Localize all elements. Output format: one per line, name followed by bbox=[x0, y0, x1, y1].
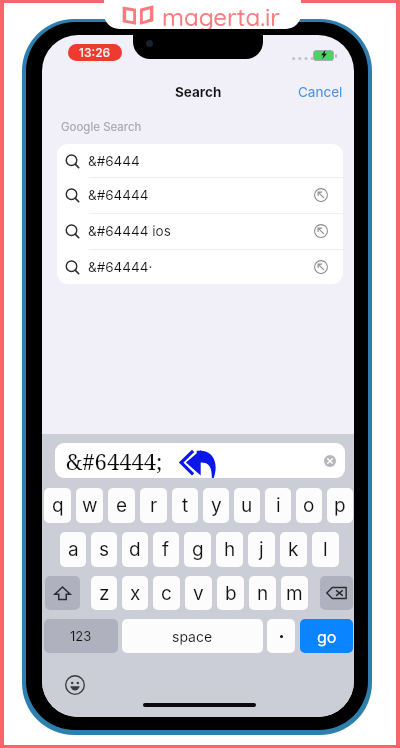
button[interactable]: o bbox=[296, 488, 322, 523]
button[interactable]: h bbox=[216, 532, 243, 567]
staticText: n bbox=[257, 582, 269, 605]
button[interactable]: Search suggestion bbox=[57, 177, 343, 213]
button[interactable]: Use suggestion bbox=[306, 252, 336, 282]
staticText: &#64444· bbox=[88, 259, 153, 275]
button[interactable]: n bbox=[249, 576, 276, 610]
button[interactable]: f bbox=[153, 532, 179, 567]
staticText: r bbox=[150, 494, 158, 517]
button[interactable]: u bbox=[234, 488, 260, 523]
button[interactable]: q bbox=[44, 488, 71, 523]
button[interactable]: go bbox=[300, 619, 353, 653]
staticText: s bbox=[99, 538, 110, 561]
staticText: p bbox=[334, 494, 346, 517]
button[interactable]: &#64444; bbox=[55, 443, 345, 478]
button[interactable]: Search suggestion bbox=[57, 144, 343, 177]
staticText: q bbox=[52, 494, 64, 517]
staticText: &#64444; bbox=[66, 446, 163, 476]
staticText: m bbox=[286, 582, 303, 605]
staticText: x bbox=[130, 582, 141, 605]
button[interactable]: z bbox=[91, 576, 117, 610]
button[interactable]: 123 bbox=[44, 619, 118, 653]
staticText: &#64444 ios bbox=[88, 223, 171, 239]
other: Search suggestion bbox=[65, 188, 79, 202]
button[interactable]: space bbox=[122, 619, 263, 653]
staticText: j bbox=[259, 538, 264, 561]
staticText: 123 bbox=[70, 628, 92, 644]
button[interactable]: Use suggestion bbox=[306, 216, 336, 246]
staticText: l bbox=[323, 538, 328, 561]
staticText: go bbox=[317, 627, 337, 646]
staticText: &#64444 bbox=[88, 187, 149, 203]
button[interactable]: Search suggestion bbox=[57, 213, 343, 249]
button[interactable]: Search suggestion bbox=[57, 249, 343, 284]
staticText: z bbox=[99, 582, 110, 605]
button[interactable]: c bbox=[153, 576, 180, 610]
staticText: e bbox=[116, 494, 128, 517]
button[interactable]: v bbox=[185, 576, 212, 610]
staticText: k bbox=[288, 538, 299, 561]
button[interactable]: y bbox=[203, 488, 229, 523]
button[interactable]: r bbox=[140, 488, 167, 523]
button[interactable]: s bbox=[91, 532, 117, 567]
staticText: f bbox=[162, 538, 170, 561]
button[interactable]: Backspace bbox=[320, 576, 353, 610]
other: Search suggestion bbox=[65, 260, 79, 274]
staticText: v bbox=[193, 582, 204, 605]
staticText: Cancel bbox=[298, 84, 343, 100]
button[interactable]: g bbox=[184, 532, 211, 567]
button[interactable]: w bbox=[76, 488, 103, 523]
staticText: magerta.ir bbox=[162, 2, 280, 29]
staticText: &#6444 bbox=[88, 153, 140, 169]
button[interactable]: b bbox=[217, 576, 244, 610]
button[interactable]: k bbox=[280, 532, 307, 567]
button[interactable]: p bbox=[327, 488, 353, 523]
button[interactable]: Shift bbox=[45, 576, 80, 610]
staticText: g bbox=[192, 538, 204, 561]
staticText: 13:26 bbox=[79, 45, 111, 60]
staticText: b bbox=[225, 582, 237, 605]
button[interactable]: j bbox=[248, 532, 275, 567]
staticText: Google Search bbox=[61, 120, 142, 134]
staticText: i bbox=[276, 494, 281, 517]
button[interactable]: d bbox=[122, 532, 148, 567]
button[interactable]: Use suggestion bbox=[306, 180, 336, 210]
other: Search suggestion bbox=[65, 224, 79, 238]
button[interactable]: l bbox=[312, 532, 339, 567]
button[interactable]: t bbox=[172, 488, 198, 523]
button[interactable]: x bbox=[122, 576, 148, 610]
button[interactable]: Emoji keyboard bbox=[65, 675, 85, 695]
other: Search suggestion bbox=[65, 154, 79, 168]
staticText: a bbox=[68, 538, 79, 561]
staticText: space bbox=[172, 628, 213, 645]
staticText: o bbox=[303, 494, 315, 517]
button[interactable]: Cancel bbox=[287, 81, 354, 103]
button[interactable]: Period bbox=[267, 619, 295, 653]
button[interactable]: m bbox=[281, 576, 308, 610]
button[interactable]: e bbox=[108, 488, 135, 523]
staticText: y bbox=[211, 494, 222, 517]
staticText: h bbox=[224, 538, 236, 561]
staticText: t bbox=[182, 494, 189, 517]
staticText: w bbox=[82, 494, 98, 517]
staticText: d bbox=[129, 538, 141, 561]
staticText: c bbox=[161, 582, 172, 605]
button[interactable]: i bbox=[265, 488, 291, 523]
button[interactable]: Clear text bbox=[324, 455, 336, 467]
staticText: Search bbox=[175, 84, 222, 100]
staticText: u bbox=[241, 494, 253, 517]
button[interactable]: a bbox=[60, 532, 86, 567]
